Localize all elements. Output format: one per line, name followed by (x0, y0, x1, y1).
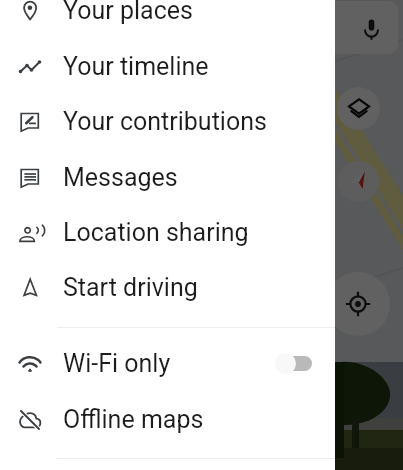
staticText: Location sharing (63, 218, 249, 247)
button[interactable]: My location (326, 272, 390, 336)
button[interactable]: Compass (338, 161, 379, 202)
staticText: Your timeline (63, 52, 209, 81)
button[interactable]: Your timeline (0, 39, 335, 94)
button[interactable]: Wi-Fi only (0, 336, 335, 391)
button[interactable]: Your places (0, 0, 335, 38)
button[interactable]: Start driving (0, 260, 335, 315)
button[interactable]: Search (186, 1, 398, 54)
button[interactable]: Offline maps (0, 392, 335, 447)
button[interactable]: Location sharing (0, 205, 335, 260)
staticText: Your places (63, 0, 193, 25)
button[interactable]: Your contributions (0, 94, 335, 149)
staticText: Messages (63, 163, 178, 192)
staticText: Offline maps (63, 405, 204, 434)
button[interactable]: Voice search (359, 17, 384, 42)
button[interactable]: Layers (337, 87, 380, 130)
staticText: Wi-Fi only (63, 349, 171, 378)
button[interactable]: Messages (0, 150, 335, 205)
staticText: Your contributions (63, 107, 267, 136)
staticText: Start driving (63, 273, 198, 302)
